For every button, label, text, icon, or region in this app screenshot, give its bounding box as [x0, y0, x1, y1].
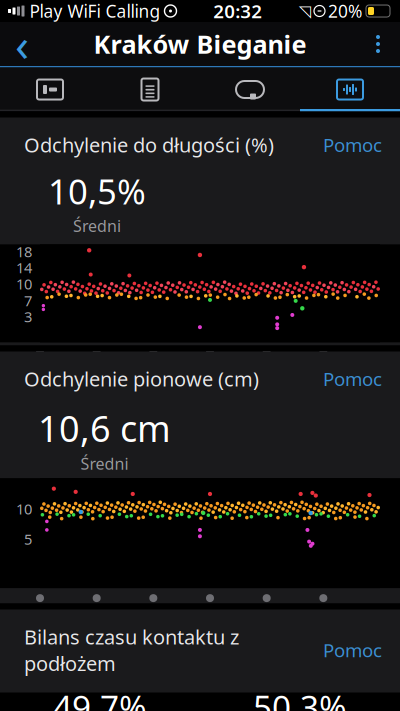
staticText: 18:00	[202, 605, 238, 625]
staticText: Średni	[73, 215, 121, 236]
staticText: ‹	[15, 14, 29, 74]
staticText: ◹	[299, 2, 311, 20]
staticText: 12:00	[146, 359, 182, 379]
staticText: Pomoc	[323, 132, 382, 157]
staticText: 20%	[328, 0, 362, 22]
staticText: 6:00	[93, 359, 121, 379]
staticText: 18:00	[202, 359, 238, 379]
button[interactable]: Pomoc	[323, 366, 382, 391]
staticText: Odchylenie do długości (%)	[24, 131, 274, 158]
staticText: 24:00	[259, 605, 295, 625]
staticText: 50,3%	[253, 685, 347, 711]
staticText: Czas (g:m:s)	[155, 629, 245, 650]
staticText: 10	[16, 274, 32, 294]
staticText: 14	[16, 258, 32, 277]
staticText: 10	[16, 499, 32, 519]
staticText: 0:00	[36, 605, 64, 625]
button[interactable]: Charts	[300, 67, 400, 111]
staticText: 10,5%	[48, 168, 146, 214]
button[interactable]: Back	[0, 22, 44, 66]
staticText: Kraków Bieganie	[93, 27, 306, 61]
button[interactable]: Pomoc	[323, 638, 382, 662]
staticText: 7	[24, 291, 32, 310]
button[interactable]: Pomoc	[323, 132, 382, 157]
button[interactable]: Map	[0, 67, 100, 111]
staticText: 12:00	[146, 605, 182, 625]
staticText: 3	[24, 307, 32, 326]
staticText: 20:32	[213, 0, 262, 23]
staticText: 0:00	[36, 359, 64, 379]
staticText: Czas (g:m:s)	[155, 383, 245, 404]
staticText: 6:00	[93, 605, 121, 625]
staticText: Play WiFi Calling	[29, 0, 160, 22]
staticText: 10,6 cm	[38, 404, 171, 452]
button[interactable]: More options	[356, 22, 400, 66]
staticText: Odchylenie pionowe (cm)	[24, 365, 259, 392]
staticText: 49,7%	[53, 685, 147, 711]
button[interactable]: Laps	[200, 67, 300, 111]
staticText: 30:01	[316, 359, 352, 379]
button[interactable]: Details	[100, 67, 200, 111]
staticText: Pomoc	[323, 638, 382, 662]
staticText: Bilans czasu kontaktu z podłożem	[24, 623, 239, 677]
staticText: 5	[24, 529, 32, 549]
staticText: Średni	[80, 453, 128, 474]
staticText: Pomoc	[323, 366, 382, 391]
staticText: 18	[16, 242, 32, 261]
staticText: 30:01	[316, 605, 352, 625]
